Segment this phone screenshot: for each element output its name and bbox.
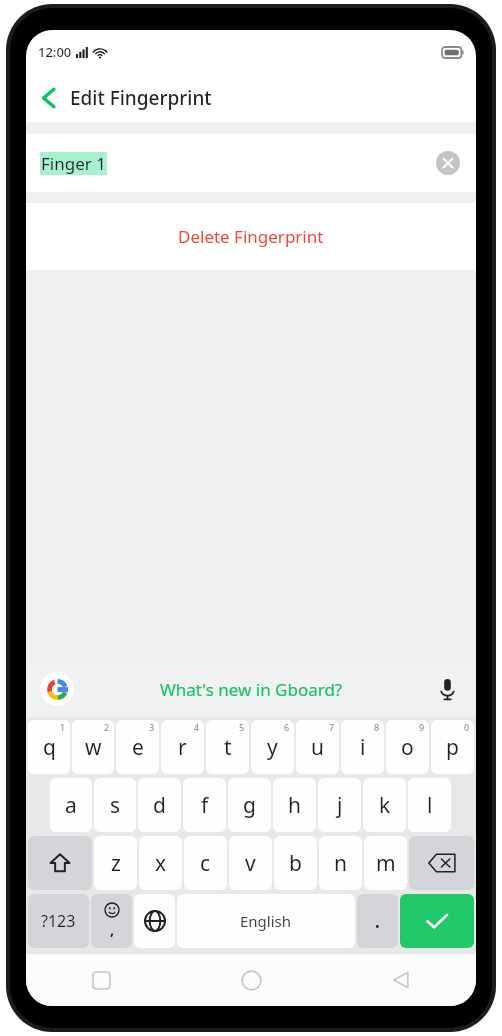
- staticText: t: [224, 733, 232, 762]
- button[interactable]: j: [318, 778, 361, 832]
- staticText: c: [200, 849, 211, 878]
- staticText: y: [267, 733, 278, 762]
- staticText: n: [334, 849, 347, 878]
- staticText: ?123: [41, 910, 76, 932]
- button[interactable]: a: [50, 778, 92, 832]
- staticText: f: [201, 791, 209, 820]
- button[interactable]: q: [28, 720, 70, 774]
- button[interactable]: b: [274, 836, 317, 890]
- button[interactable]: What's new in Gboard?: [160, 678, 343, 701]
- staticText: x: [155, 849, 167, 878]
- button[interactable]: n: [319, 836, 362, 890]
- staticText: u: [311, 733, 324, 762]
- button[interactable]: f: [183, 778, 226, 832]
- button[interactable]: Finger 1: [26, 134, 476, 192]
- staticText: ,: [110, 919, 115, 939]
- button[interactable]: r: [161, 720, 204, 774]
- staticText: Finger 1: [41, 152, 106, 175]
- staticText: z: [111, 849, 121, 878]
- button[interactable]: Recent apps: [26, 954, 176, 1006]
- button[interactable]: Clear text: [432, 147, 464, 179]
- staticText: j: [337, 791, 343, 820]
- staticText: 4: [194, 721, 200, 733]
- button[interactable]: e: [116, 720, 159, 774]
- staticText: Delete Fingerprint: [178, 225, 324, 248]
- button[interactable]: z: [94, 836, 137, 890]
- staticText: w: [85, 733, 102, 762]
- button[interactable]: Back: [326, 954, 476, 1006]
- staticText: l: [427, 791, 433, 820]
- staticText: r: [178, 733, 187, 762]
- button[interactable]: v: [229, 836, 272, 890]
- button[interactable]: English: [177, 894, 355, 948]
- button[interactable]: Back: [26, 76, 70, 120]
- button[interactable]: y: [251, 720, 294, 774]
- button[interactable]: c: [184, 836, 227, 890]
- staticText: 9: [419, 721, 425, 733]
- staticText: 6: [284, 721, 290, 733]
- staticText: d: [153, 791, 166, 820]
- staticText: What's new in Gboard?: [160, 678, 343, 701]
- button[interactable]: d: [138, 778, 181, 832]
- button[interactable]: t: [206, 720, 249, 774]
- button[interactable]: Voice input: [430, 672, 464, 706]
- staticText: 12:00: [38, 43, 72, 61]
- staticText: v: [245, 849, 256, 878]
- button[interactable]: h: [273, 778, 316, 832]
- button[interactable]: p: [431, 720, 474, 774]
- button[interactable]: x: [139, 836, 182, 890]
- staticText: s: [110, 791, 121, 820]
- button[interactable]: m: [364, 836, 407, 890]
- button[interactable]: Done: [400, 894, 474, 948]
- staticText: p: [446, 733, 459, 762]
- button[interactable]: k: [363, 778, 406, 832]
- staticText: b: [289, 849, 302, 878]
- button[interactable]: u: [296, 720, 339, 774]
- staticText: h: [288, 791, 301, 820]
- staticText: 0: [464, 721, 470, 733]
- button[interactable]: Home: [176, 954, 326, 1006]
- button[interactable]: Shift: [28, 836, 92, 890]
- staticText: m: [376, 849, 396, 878]
- button[interactable]: ?123: [28, 894, 89, 948]
- button[interactable]: l: [408, 778, 451, 832]
- button[interactable]: Google: [40, 672, 74, 706]
- button[interactable]: i: [341, 720, 384, 774]
- staticText: 7: [329, 721, 335, 733]
- staticText: 1: [60, 721, 66, 733]
- staticText: e: [132, 733, 144, 762]
- staticText: i: [360, 733, 366, 762]
- button[interactable]: s: [94, 778, 136, 832]
- staticText: a: [65, 791, 77, 820]
- button[interactable]: Delete Fingerprint: [26, 203, 476, 270]
- staticText: g: [243, 791, 256, 820]
- button[interactable]: o: [386, 720, 429, 774]
- staticText: 3: [149, 721, 155, 733]
- staticText: Edit Fingerprint: [70, 85, 212, 111]
- button[interactable]: Emoji and comma: [91, 894, 132, 948]
- staticText: 8: [374, 721, 380, 733]
- staticText: 2: [104, 721, 110, 733]
- button[interactable]: g: [228, 778, 271, 832]
- staticText: .: [375, 910, 380, 933]
- staticText: English: [240, 911, 292, 931]
- button[interactable]: Switch language: [134, 894, 175, 948]
- button[interactable]: w: [72, 720, 114, 774]
- button[interactable]: .: [357, 894, 398, 948]
- staticText: q: [43, 733, 56, 762]
- button[interactable]: Backspace: [409, 836, 474, 890]
- staticText: 5: [239, 721, 245, 733]
- staticText: k: [379, 791, 391, 820]
- staticText: o: [401, 733, 414, 762]
